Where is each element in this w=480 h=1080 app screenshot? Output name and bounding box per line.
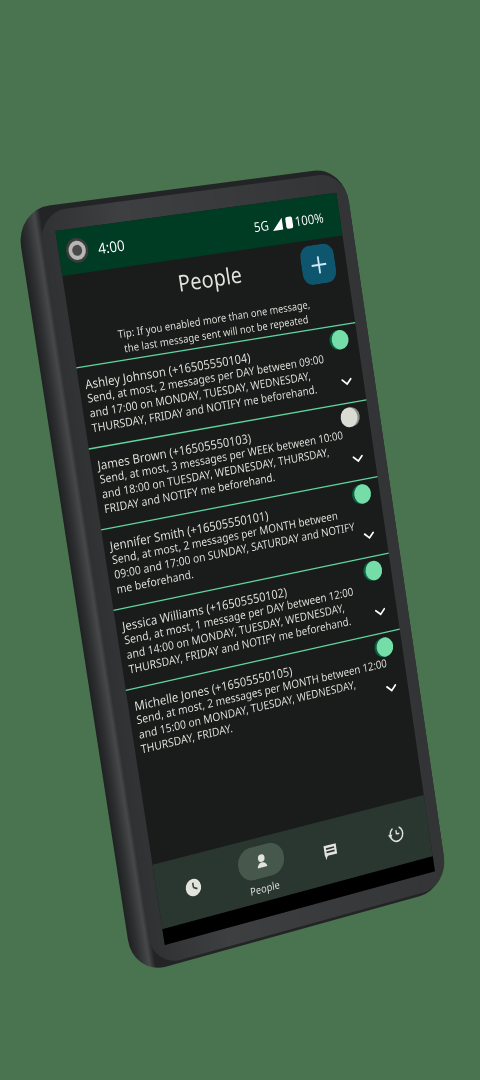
staticText: and 15:00 on MONDAY, TUESDAY, WEDNESDAY, xyxy=(5,369,194,381)
staticText: and 14:00 on MONDAY, TUESDAY, WEDNESDAY, xyxy=(5,309,194,321)
button[interactable]: Michelle Jones (+16505550105) xyxy=(0,340,240,400)
staticText: Jessica Williams (+16505550102) xyxy=(5,287,146,300)
staticText: FRIDAY and NOTIFY me beforehand. xyxy=(5,200,151,212)
staticText: People xyxy=(77,505,103,516)
staticText: Send, at most, 2 messages per MONTH betw… xyxy=(5,358,224,370)
button[interactable]: Expand xyxy=(218,257,232,271)
button[interactable]: Tab xyxy=(180,472,240,521)
button[interactable]: Jennifer Smith (+16505550101) xyxy=(0,220,240,280)
button[interactable]: Expand xyxy=(218,377,232,391)
staticText: Send, at most, 3 messages per WEEK betwe… xyxy=(5,178,215,190)
staticText: me beforehand. xyxy=(5,260,70,272)
staticText: Send, at most, 1 message per DAY between… xyxy=(5,298,204,310)
staticText: THURSDAY, FRIDAY. xyxy=(5,380,83,392)
staticText: Send, at most, 2 messages per MONTH betw… xyxy=(5,238,200,250)
button[interactable]: Tab xyxy=(120,472,180,521)
button[interactable]: Expand xyxy=(218,197,232,211)
staticText: Michelle Jones (+16505550105) xyxy=(5,347,141,360)
button[interactable]: Jessica Williams (+16505550102) xyxy=(0,280,240,340)
button[interactable]: Tab xyxy=(0,472,60,521)
staticText: Jennifer Smith (+16505550101) xyxy=(5,227,140,240)
staticText: 09:00 and 17:00 on SUNDAY, SATURDAY and … xyxy=(5,249,214,261)
staticText: THURSDAY, FRIDAY and NOTIFY me beforehan… xyxy=(5,320,198,332)
staticText: and 18:00 on TUESDAY, WEDNESDAY, THURSDA… xyxy=(5,189,201,201)
button[interactable]: People xyxy=(60,472,120,521)
button[interactable]: Toggle xyxy=(215,344,232,359)
button[interactable]: Expand xyxy=(218,317,232,331)
button[interactable]: James Brown (+16505550103) xyxy=(0,160,240,220)
button[interactable]: Toggle xyxy=(215,284,232,299)
